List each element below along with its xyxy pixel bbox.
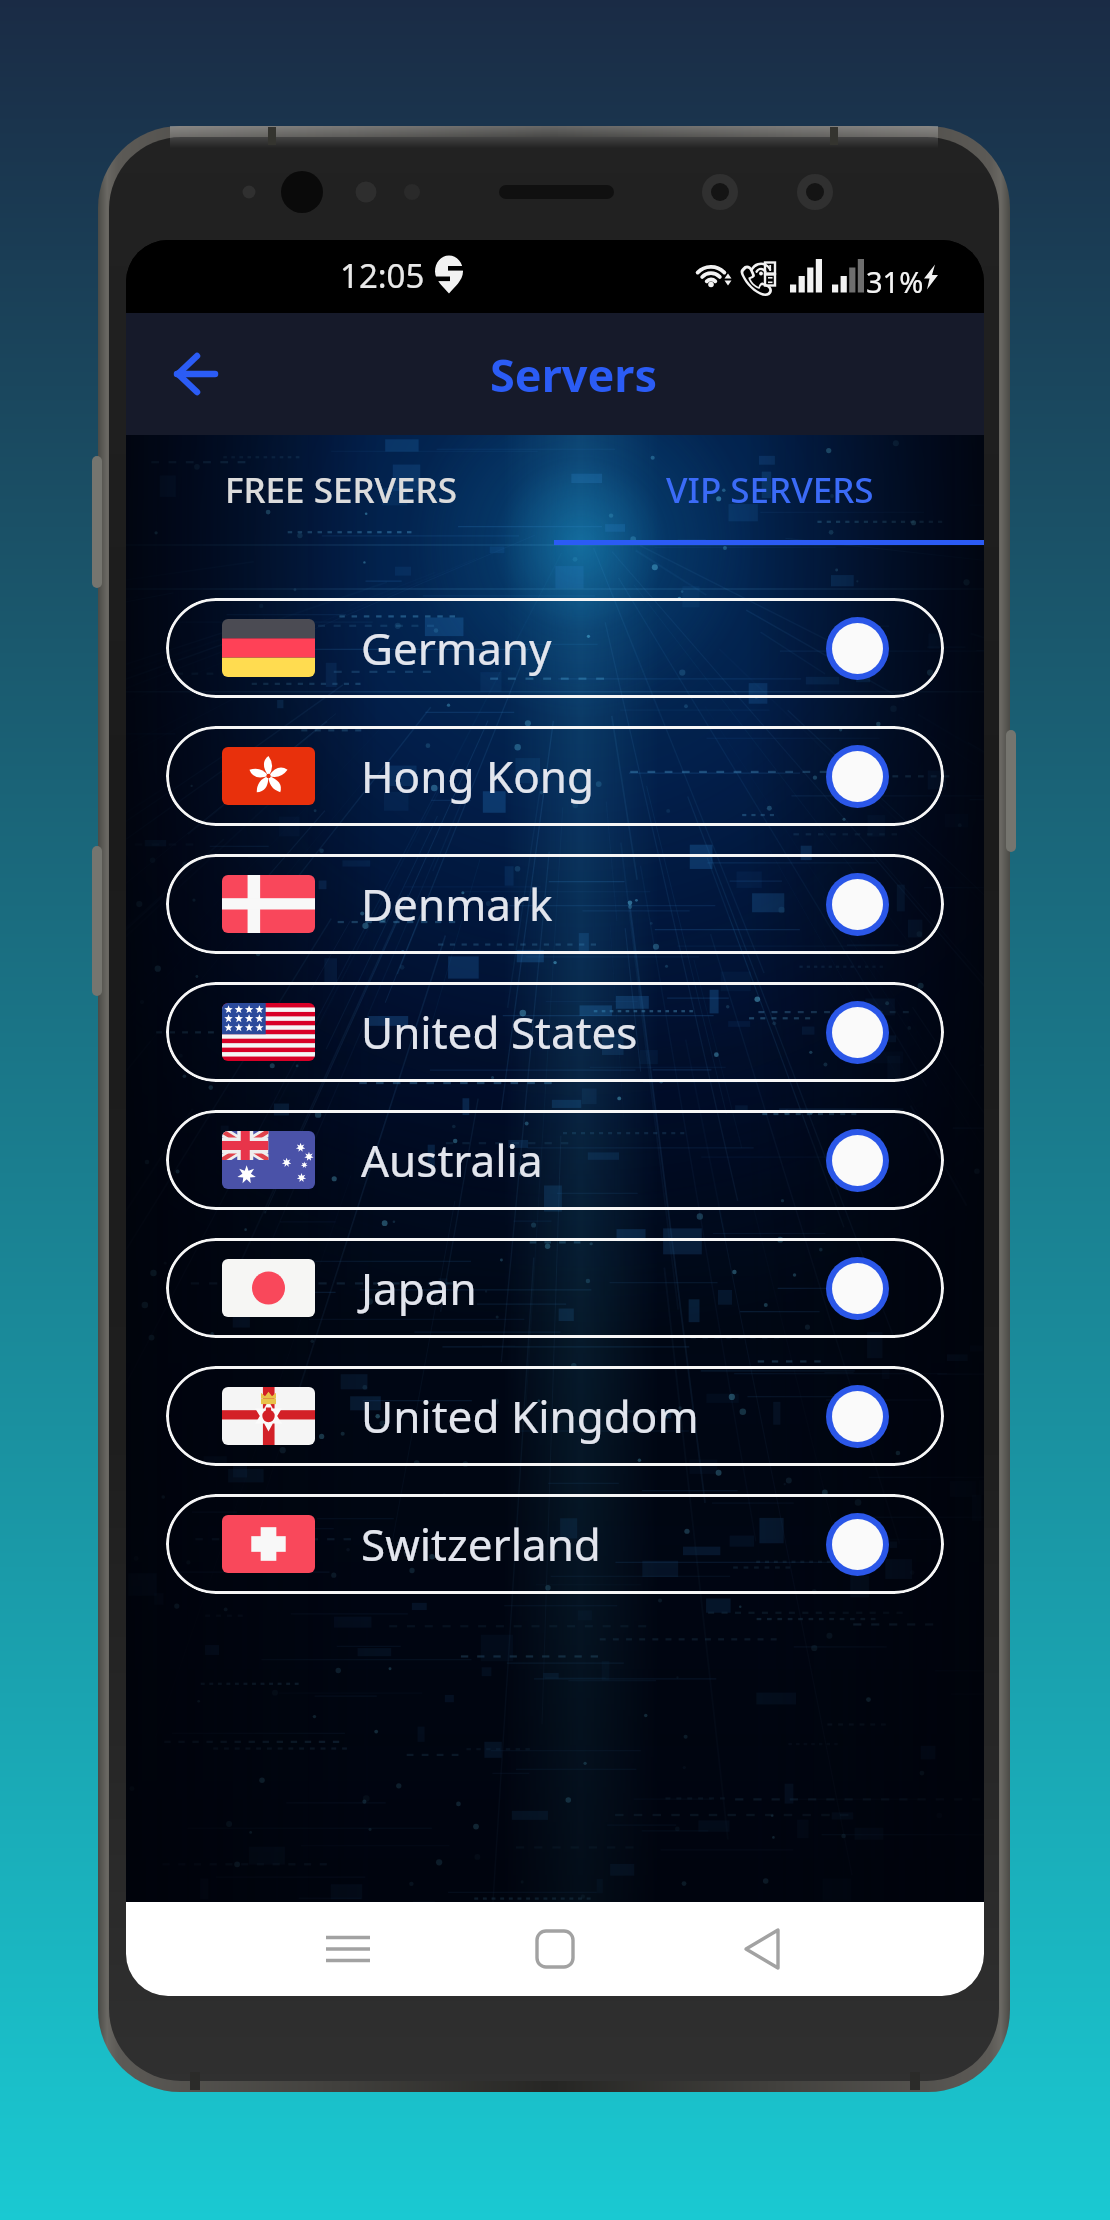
staticText: Denmark xyxy=(361,874,553,934)
staticText: 12:05 xyxy=(340,253,425,298)
staticText: FREE SERVERS xyxy=(225,466,457,514)
button[interactable]: VIP SERVERS xyxy=(555,435,984,545)
button[interactable]: Japan xyxy=(166,1238,944,1338)
button[interactable]: Back xyxy=(690,1902,834,1996)
button[interactable]: Australia xyxy=(166,1110,944,1210)
staticText: 31% xyxy=(866,262,924,301)
button[interactable]: Back xyxy=(157,335,235,413)
button[interactable]: Recent apps xyxy=(276,1902,420,1996)
button[interactable]: Hong Kong xyxy=(166,726,944,826)
button[interactable]: Home xyxy=(483,1902,627,1996)
staticText: VIP SERVERS xyxy=(666,466,874,514)
staticText: Germany xyxy=(361,618,552,678)
button[interactable]: Switzerland xyxy=(166,1494,944,1594)
button[interactable]: Denmark xyxy=(166,854,944,954)
staticText: Japan xyxy=(361,1258,477,1318)
staticText: Australia xyxy=(361,1130,543,1190)
staticText: Hong Kong xyxy=(361,746,595,806)
button[interactable]: United Kingdom xyxy=(166,1366,944,1466)
button[interactable]: Germany xyxy=(166,598,944,698)
staticText: Servers xyxy=(490,344,658,405)
staticText: Switzerland xyxy=(361,1514,601,1574)
staticText: United Kingdom xyxy=(361,1386,699,1446)
staticText: United States xyxy=(361,1002,638,1062)
button[interactable]: FREE SERVERS xyxy=(126,435,555,545)
button[interactable]: United States xyxy=(166,982,944,1082)
